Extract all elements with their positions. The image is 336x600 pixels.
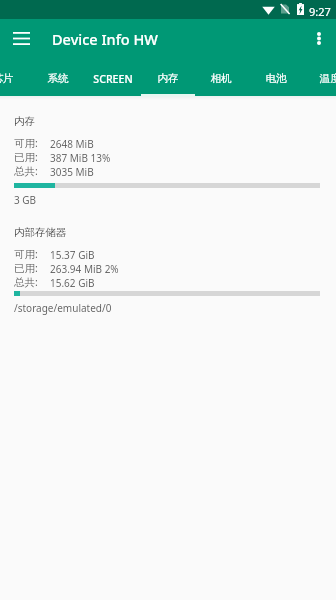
button[interactable]: 电池 [248, 57, 304, 96]
staticText: 内存 [14, 115, 35, 128]
staticText: 已用: [14, 261, 38, 275]
staticText: /storage/emulated/0 [14, 301, 112, 315]
staticText: 15.62 GiB [50, 276, 95, 290]
button[interactable]: 相机 [193, 57, 249, 96]
staticText: 相机 [210, 72, 232, 85]
button[interactable]: 温度 [302, 57, 336, 96]
staticText: 15.37 GiB [50, 248, 95, 262]
staticText: 内部存储器 [14, 226, 67, 239]
staticText: 3035 MiB [50, 165, 94, 179]
staticText: 总共: [14, 164, 38, 178]
staticText: 内存 [157, 72, 179, 85]
staticText: Device Info HW [52, 29, 158, 49]
button[interactable]: More options [298, 19, 336, 57]
staticText: 可用: [14, 247, 38, 261]
staticText: SCREEN [93, 72, 133, 86]
button[interactable]: SCREEN [85, 57, 141, 96]
button[interactable]: 系统 [30, 57, 86, 96]
staticText: 3 GB [14, 193, 37, 207]
button[interactable]: 内存 [140, 57, 196, 96]
staticText: 263.94 MiB 2% [50, 262, 119, 276]
staticText: 系统 [47, 72, 69, 85]
button[interactable]: Open navigation drawer [0, 19, 42, 57]
staticText: 电池 [265, 72, 287, 85]
staticText: 总共: [14, 275, 38, 289]
button[interactable]: 芯片 [0, 57, 31, 96]
staticText: 2648 MiB [50, 137, 94, 151]
staticText: 可用: [14, 136, 38, 150]
staticText: 温度 [319, 72, 336, 85]
staticText: 已用: [14, 150, 38, 164]
staticText: 387 MiB 13% [50, 151, 111, 165]
staticText: 芯片 [0, 72, 14, 85]
staticText: 9:27 [309, 4, 331, 19]
